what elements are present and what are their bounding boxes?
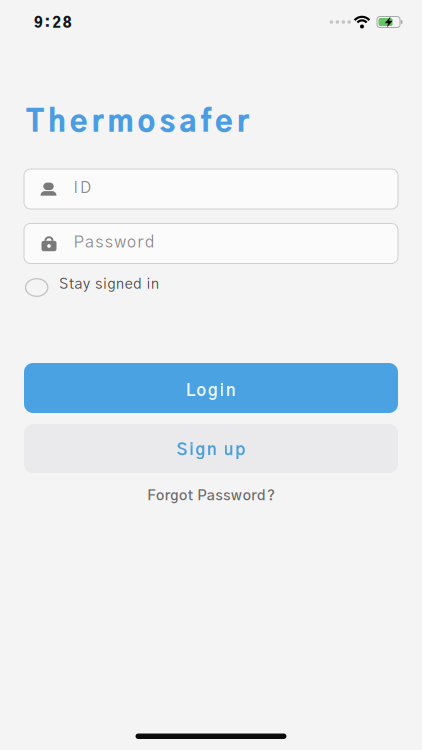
button[interactable]: F (0, 485, 422, 504)
staticText: d (257, 489, 266, 503)
staticText: s (223, 489, 230, 503)
staticText: a (85, 235, 94, 251)
staticText: D (80, 180, 91, 196)
staticText: s (159, 108, 175, 137)
staticText: I (73, 180, 78, 196)
staticText: w (231, 489, 242, 503)
staticText: s (105, 235, 113, 251)
staticText: n (226, 383, 236, 399)
staticText: e (70, 108, 88, 137)
staticText: P (73, 235, 83, 251)
staticText: d (145, 235, 154, 251)
staticText: o (243, 489, 251, 503)
staticText: y (83, 277, 90, 292)
staticText: o (127, 235, 136, 251)
staticText: f (200, 108, 211, 137)
button[interactable]: L (24, 363, 398, 413)
staticText: L (186, 383, 195, 399)
button[interactable]: I (24, 169, 398, 209)
staticText: d (133, 277, 141, 292)
staticText: g (107, 277, 115, 292)
staticText: o (179, 489, 187, 503)
staticText: r (237, 108, 249, 137)
staticText: s (216, 489, 223, 503)
staticText: t (69, 277, 74, 292)
staticText: e (125, 277, 133, 292)
staticText: 2 (52, 16, 61, 31)
staticText: e (215, 108, 233, 137)
staticText: i (103, 277, 107, 292)
staticText: n (207, 442, 217, 459)
staticText: a (207, 489, 215, 503)
staticText: h (48, 108, 66, 137)
staticText: u (224, 442, 234, 459)
button[interactable]: S (24, 424, 398, 473)
staticText: g (208, 383, 218, 399)
staticText: 9 (34, 16, 43, 31)
staticText: S (59, 277, 68, 292)
staticText: i (219, 383, 224, 399)
staticText: r (92, 108, 104, 137)
staticText: n (151, 277, 159, 292)
staticText: F (147, 489, 155, 503)
staticText: S (177, 442, 188, 459)
staticText: w (114, 235, 125, 251)
staticText: P (197, 489, 206, 503)
staticText: a (74, 277, 82, 292)
staticText: n (116, 277, 124, 292)
button[interactable]: P (24, 223, 398, 263)
staticText: r (137, 235, 143, 251)
staticText: 8 (63, 16, 72, 31)
staticText: m (108, 108, 134, 137)
staticText: g (170, 489, 178, 503)
staticText: s (95, 235, 103, 251)
staticText: : (45, 16, 51, 31)
staticText: a (179, 108, 196, 137)
staticText: g (196, 442, 206, 459)
staticText: i (189, 442, 194, 459)
staticText: r (165, 489, 170, 503)
staticText: p (235, 442, 245, 459)
staticText: i (146, 277, 150, 292)
staticText: s (95, 277, 102, 292)
staticText: r (251, 489, 256, 503)
staticText: o (137, 108, 155, 137)
staticText: t (188, 489, 193, 503)
button[interactable]: S (0, 276, 159, 298)
staticText: T (26, 108, 44, 137)
staticText: o (156, 489, 164, 503)
staticText: o (196, 383, 206, 399)
staticText: ? (267, 489, 275, 503)
